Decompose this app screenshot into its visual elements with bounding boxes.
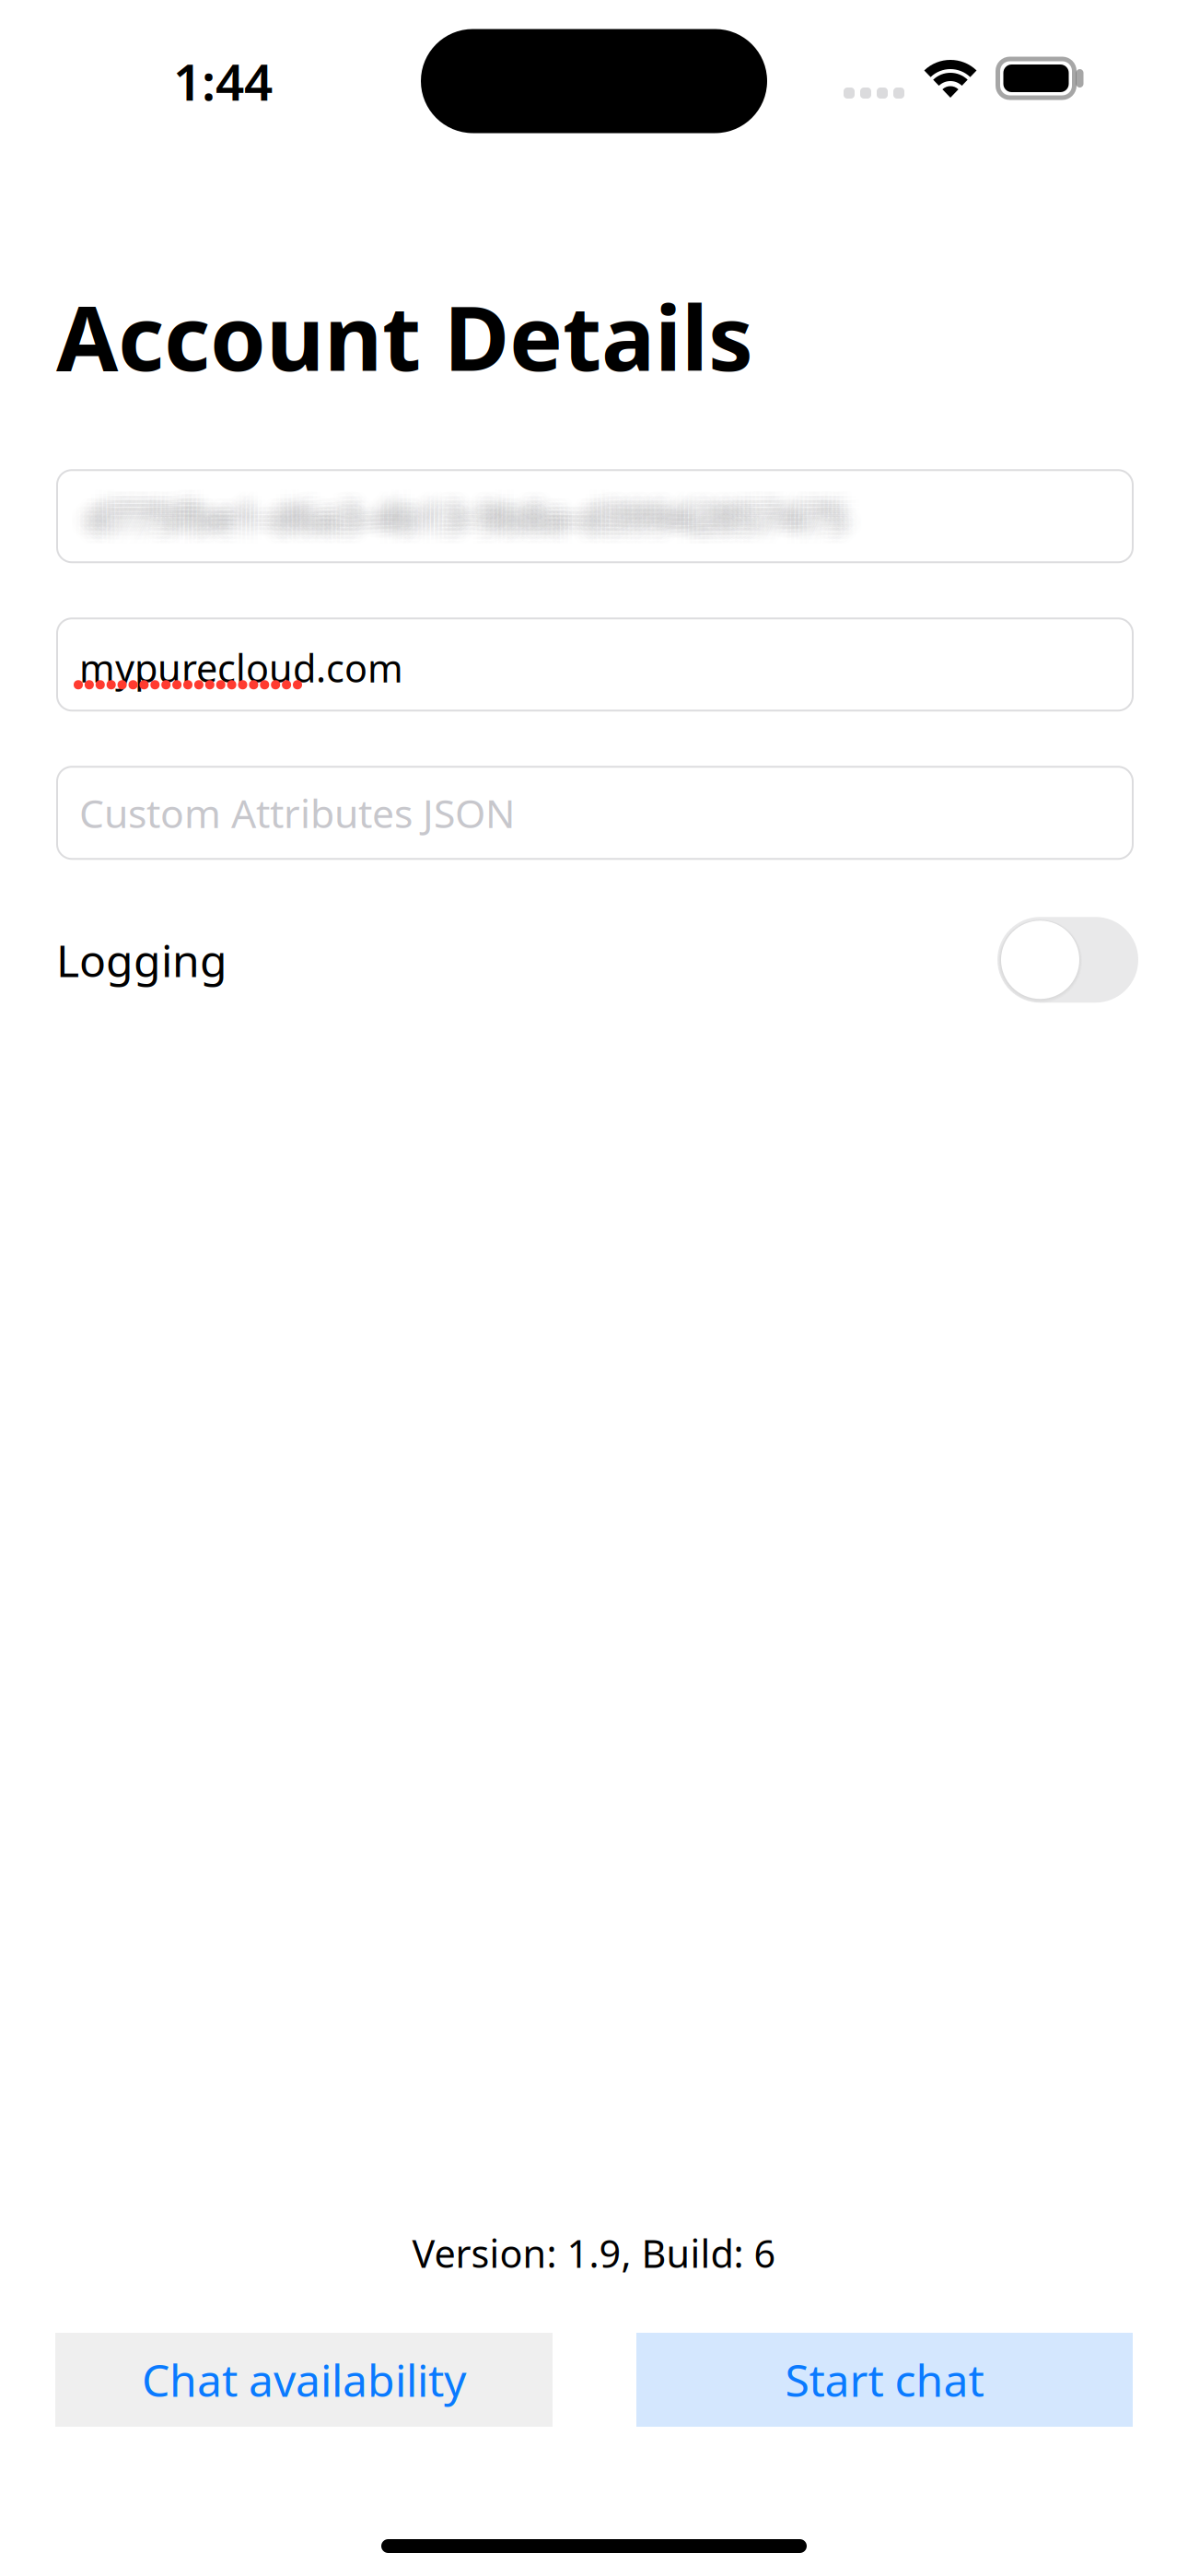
staticText: d775fbe1-d6a3-4b13-9b8a-d39942857475	[82, 486, 843, 538]
staticText: Custom Attributes JSON	[79, 787, 515, 839]
staticText: d775fbe1-d6a3-4b13-9b8a-d39942857475	[73, 502, 835, 554]
staticText: d775fbe1-d6a3-4b13-9b8a-d39942857475	[90, 502, 851, 554]
staticText: d775fbe1-d6a3-4b13-9b8a-d39942857475	[82, 498, 843, 550]
staticText: d775fbe1-d6a3-4b13-9b8a-d39942857475	[86, 478, 847, 530]
staticText: d775fbe1-d6a3-4b13-9b8a-d39942857475	[82, 502, 843, 554]
staticText: d775fbe1-d6a3-4b13-9b8a-d39942857475	[86, 502, 847, 554]
staticText: d775fbe1-d6a3-4b13-9b8a-d39942857475	[94, 478, 855, 530]
staticText: d775fbe1-d6a3-4b13-9b8a-d39942857475	[82, 494, 843, 546]
staticText: d775fbe1-d6a3-4b13-9b8a-d39942857475	[86, 482, 847, 534]
staticText: d775fbe1-d6a3-4b13-9b8a-d39942857475	[94, 482, 855, 534]
staticText: d775fbe1-d6a3-4b13-9b8a-d39942857475	[82, 490, 843, 542]
button[interactable]: Logging	[997, 917, 1138, 1003]
button[interactable]: Account ID	[56, 469, 1134, 563]
staticText: d775fbe1-d6a3-4b13-9b8a-d39942857475	[102, 478, 863, 530]
staticText: d775fbe1-d6a3-4b13-9b8a-d39942857475	[69, 494, 831, 546]
staticText: d775fbe1-d6a3-4b13-9b8a-d39942857475	[78, 502, 839, 554]
staticText: d775fbe1-d6a3-4b13-9b8a-d39942857475	[69, 490, 831, 542]
staticText: d775fbe1-d6a3-4b13-9b8a-d39942857475	[73, 482, 835, 534]
staticText: d775fbe1-d6a3-4b13-9b8a-d39942857475	[98, 494, 859, 546]
staticText: d775fbe1-d6a3-4b13-9b8a-d39942857475	[73, 486, 835, 538]
button[interactable]: mypurecloud.com	[56, 618, 1134, 712]
staticText: d775fbe1-d6a3-4b13-9b8a-d39942857475	[82, 482, 843, 534]
staticText: Logging	[56, 930, 227, 989]
staticText: Chat availability	[142, 2350, 466, 2409]
button[interactable]: Custom Attributes JSON	[56, 766, 1134, 860]
staticText: d775fbe1-d6a3-4b13-9b8a-d39942857475	[90, 490, 851, 542]
staticText: d775fbe1-d6a3-4b13-9b8a-d39942857475	[94, 486, 855, 538]
staticText: d775fbe1-d6a3-4b13-9b8a-d39942857475	[102, 502, 863, 554]
staticText: d775fbe1-d6a3-4b13-9b8a-d39942857475	[102, 498, 863, 550]
staticText: d775fbe1-d6a3-4b13-9b8a-d39942857475	[94, 498, 855, 550]
staticText: d775fbe1-d6a3-4b13-9b8a-d39942857475	[78, 486, 839, 538]
staticText: d775fbe1-d6a3-4b13-9b8a-d39942857475	[78, 490, 839, 542]
staticText: d775fbe1-d6a3-4b13-9b8a-d39942857475	[98, 482, 859, 534]
staticText: d775fbe1-d6a3-4b13-9b8a-d39942857475	[102, 482, 863, 534]
staticText: d775fbe1-d6a3-4b13-9b8a-d39942857475	[94, 490, 855, 542]
staticText: d775fbe1-d6a3-4b13-9b8a-d39942857475	[98, 478, 859, 530]
staticText: d775fbe1-d6a3-4b13-9b8a-d39942857475	[102, 490, 863, 542]
staticText: d775fbe1-d6a3-4b13-9b8a-d39942857475	[102, 494, 863, 546]
staticText: d775fbe1-d6a3-4b13-9b8a-d39942857475	[69, 482, 831, 534]
staticText: d775fbe1-d6a3-4b13-9b8a-d39942857475	[73, 494, 835, 546]
staticText: d775fbe1-d6a3-4b13-9b8a-d39942857475	[73, 490, 835, 542]
staticText: d775fbe1-d6a3-4b13-9b8a-d39942857475	[98, 486, 859, 538]
staticText: mypurecloud.com	[79, 642, 403, 693]
staticText: d775fbe1-d6a3-4b13-9b8a-d39942857475	[90, 498, 851, 550]
staticText: Version: 1.9, Build: 6	[412, 2228, 776, 2278]
staticText: d775fbe1-d6a3-4b13-9b8a-d39942857475	[86, 486, 847, 538]
staticText: d775fbe1-d6a3-4b13-9b8a-d39942857475	[86, 498, 847, 550]
staticText: d775fbe1-d6a3-4b13-9b8a-d39942857475	[69, 498, 831, 550]
staticText: d775fbe1-d6a3-4b13-9b8a-d39942857475	[98, 498, 859, 550]
staticText: d775fbe1-d6a3-4b13-9b8a-d39942857475	[69, 502, 831, 554]
staticText: d775fbe1-d6a3-4b13-9b8a-d39942857475	[86, 490, 847, 542]
staticText: d775fbe1-d6a3-4b13-9b8a-d39942857475	[90, 494, 851, 546]
staticText: d775fbe1-d6a3-4b13-9b8a-d39942857475	[69, 478, 831, 530]
staticText: d775fbe1-d6a3-4b13-9b8a-d39942857475	[78, 498, 839, 550]
staticText: d775fbe1-d6a3-4b13-9b8a-d39942857475	[94, 494, 855, 546]
staticText: d775fbe1-d6a3-4b13-9b8a-d39942857475	[73, 498, 835, 550]
staticText: d775fbe1-d6a3-4b13-9b8a-d39942857475	[73, 478, 835, 530]
staticText: d775fbe1-d6a3-4b13-9b8a-d39942857475	[90, 478, 851, 530]
button[interactable]: Chat availability	[55, 2333, 553, 2427]
staticText: d775fbe1-d6a3-4b13-9b8a-d39942857475	[78, 494, 839, 546]
staticText: Account Details	[56, 276, 753, 396]
staticText: d775fbe1-d6a3-4b13-9b8a-d39942857475	[78, 482, 839, 534]
staticText: d775fbe1-d6a3-4b13-9b8a-d39942857475	[90, 486, 851, 538]
staticText: 1:44	[173, 48, 273, 115]
button[interactable]: Start chat	[636, 2333, 1133, 2427]
staticText: d775fbe1-d6a3-4b13-9b8a-d39942857475	[90, 482, 851, 534]
staticText: d775fbe1-d6a3-4b13-9b8a-d39942857475	[86, 494, 847, 546]
staticText: Start chat	[785, 2350, 984, 2409]
staticText: d775fbe1-d6a3-4b13-9b8a-d39942857475	[69, 486, 831, 538]
staticText: d775fbe1-d6a3-4b13-9b8a-d39942857475	[98, 502, 859, 554]
staticText: d775fbe1-d6a3-4b13-9b8a-d39942857475	[78, 478, 839, 530]
staticText: d775fbe1-d6a3-4b13-9b8a-d39942857475	[98, 490, 859, 542]
staticText: d775fbe1-d6a3-4b13-9b8a-d39942857475	[94, 502, 855, 554]
staticText: d775fbe1-d6a3-4b13-9b8a-d39942857475	[82, 478, 843, 530]
staticText: d775fbe1-d6a3-4b13-9b8a-d39942857475	[102, 486, 863, 538]
